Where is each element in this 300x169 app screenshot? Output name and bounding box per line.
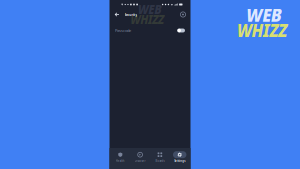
staticText: Health xyxy=(116,159,125,163)
button[interactable]: Passcode xyxy=(109,20,190,41)
button[interactable]: Health xyxy=(111,148,129,169)
staticText: WEB xyxy=(130,2,157,18)
button[interactable]: Boards xyxy=(151,148,169,169)
button[interactable]: Back xyxy=(112,10,121,19)
staticText: Boards xyxy=(155,159,164,163)
staticText: Passcode xyxy=(115,28,131,33)
staticText: WEB xyxy=(246,3,288,28)
button[interactable]: Settings xyxy=(171,148,189,169)
button[interactable]: Help xyxy=(178,10,187,19)
button[interactable]: Discover xyxy=(131,148,149,169)
staticText: Settings xyxy=(174,159,185,163)
staticText: Discover xyxy=(135,159,146,163)
staticText: WHIZZ xyxy=(225,18,288,43)
staticText: WHIZZ xyxy=(130,12,170,28)
staticText: Security xyxy=(124,12,140,17)
